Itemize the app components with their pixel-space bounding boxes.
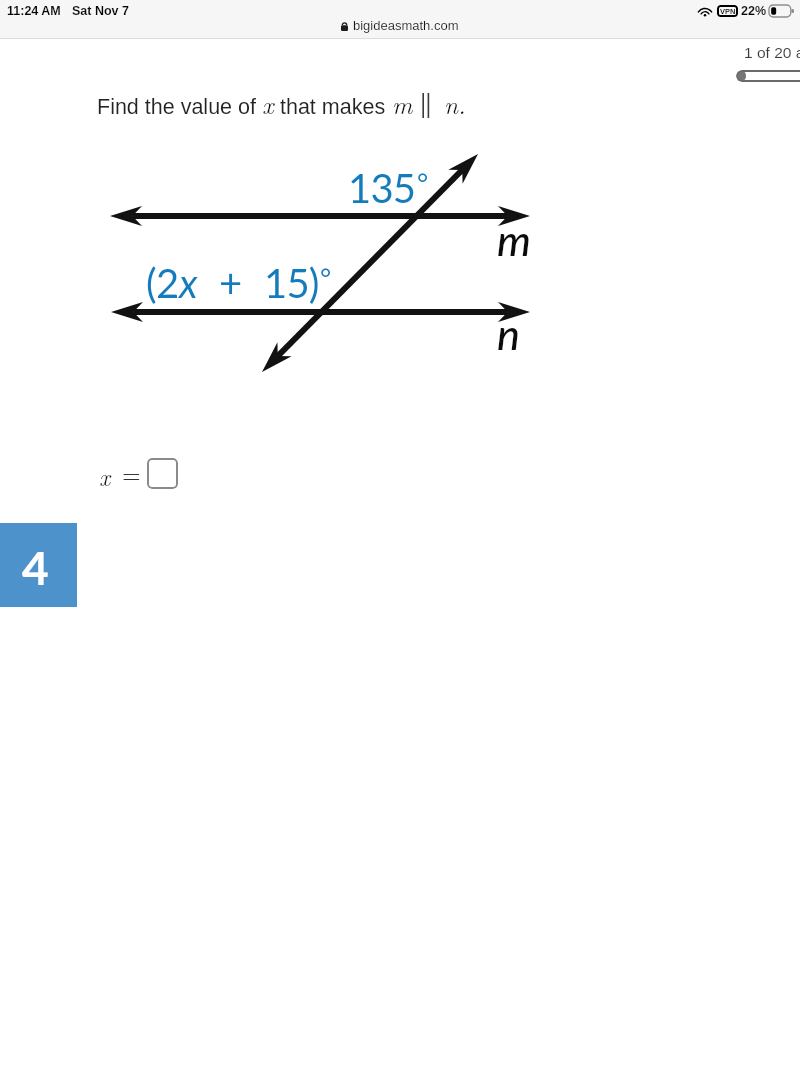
staticText: Sat Nov 7 — [72, 4, 129, 18]
staticText: 4 — [22, 540, 49, 595]
other: Wi-Fi — [697, 5, 713, 17]
button[interactable]: 4 — [0, 523, 77, 607]
staticText: VPN — [720, 7, 736, 15]
other: Battery 22 percent — [769, 5, 794, 17]
button[interactable]: Answer input — [147, 458, 178, 489]
staticText: m — [392, 86, 413, 121]
button[interactable]: Progress — [736, 70, 800, 82]
staticText: + — [219, 259, 242, 307]
staticText: (2 — [146, 259, 179, 307]
staticText: that makes — [274, 95, 392, 119]
staticText: 22% — [741, 4, 767, 18]
staticText: ° — [320, 261, 332, 293]
staticText: m — [497, 214, 531, 266]
staticText: 1 of 20 an — [744, 44, 800, 61]
staticText: bigideasmath.com — [353, 18, 459, 33]
staticText: = — [122, 456, 141, 490]
button[interactable]: bigideasmath.com — [339, 18, 461, 33]
staticText: 15) — [264, 259, 319, 307]
staticText: x — [99, 459, 111, 493]
staticText: n. — [444, 86, 466, 121]
staticText: 11:24 AM — [7, 4, 61, 18]
staticText: x — [262, 86, 274, 121]
staticText: ° — [417, 166, 429, 198]
staticText: x — [179, 259, 197, 307]
staticText: 135 — [348, 164, 416, 212]
staticText: n — [497, 308, 520, 360]
staticText: Find the value of — [97, 95, 262, 119]
